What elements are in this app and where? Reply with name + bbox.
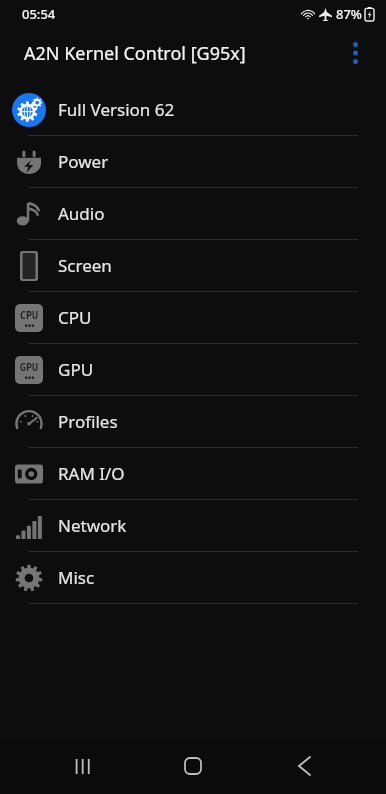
staticText: CPU: [58, 306, 92, 329]
button[interactable]: Full Version 62: [0, 84, 386, 136]
button[interactable]: RAM I/O: [0, 448, 386, 500]
staticText: CPU: [20, 308, 38, 322]
staticText: ▪▪▪: [24, 374, 35, 380]
staticText: A2N Kernel Control [G95x]: [24, 41, 246, 66]
staticText: Full Version 62: [58, 98, 175, 121]
staticText: Network: [58, 514, 127, 537]
button[interactable]: Network: [0, 500, 386, 552]
button[interactable]: Back: [276, 738, 332, 794]
staticText: 87%: [336, 5, 362, 23]
staticText: Misc: [58, 566, 95, 589]
staticText: Power: [58, 150, 109, 173]
button[interactable]: More options: [332, 30, 378, 76]
button[interactable]: Screen: [0, 240, 386, 292]
staticText: Profiles: [58, 410, 118, 433]
button[interactable]: Audio: [0, 188, 386, 240]
staticText: ▪▪▪: [24, 322, 35, 328]
button[interactable]: CPU: [0, 292, 386, 344]
staticText: 05:54: [22, 5, 56, 23]
staticText: Screen: [58, 254, 112, 277]
button[interactable]: Home: [165, 738, 221, 794]
button[interactable]: Profiles: [0, 396, 386, 448]
staticText: Audio: [58, 202, 105, 225]
button[interactable]: GPU: [0, 344, 386, 396]
button[interactable]: Misc: [0, 552, 386, 604]
staticText: GPU: [58, 358, 94, 381]
button[interactable]: Power: [0, 136, 386, 188]
button[interactable]: Recent apps: [55, 738, 111, 794]
staticText: RAM I/O: [58, 462, 125, 485]
staticText: GPU: [20, 360, 38, 374]
